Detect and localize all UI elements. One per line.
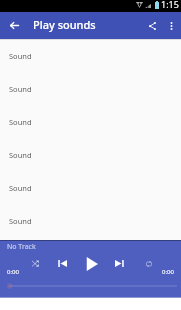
button[interactable]: Share <box>142 16 162 36</box>
staticText: 0:00 <box>162 268 174 276</box>
staticText: Sound <box>9 216 32 226</box>
staticText: Sound <box>9 51 32 61</box>
button[interactable]: Sound <box>0 171 181 204</box>
button[interactable]: Back <box>0 12 28 39</box>
staticText: Sound <box>9 150 32 160</box>
button[interactable]: Play <box>81 253 102 274</box>
staticText: Sound <box>9 84 32 94</box>
button[interactable]: Previous <box>54 255 71 272</box>
staticText: No Track <box>7 242 36 252</box>
staticText: 0:00 <box>7 268 19 276</box>
staticText: Sound <box>9 117 32 127</box>
button[interactable]: Sound <box>0 204 181 237</box>
staticText: 1:15 <box>161 0 179 10</box>
button[interactable]: Next <box>111 255 128 272</box>
button[interactable]: Sound <box>0 72 181 105</box>
button[interactable]: Sound <box>0 39 181 72</box>
button[interactable]: Shuffle <box>27 255 44 272</box>
button[interactable]: More options <box>161 16 181 36</box>
button[interactable]: Repeat <box>140 255 157 272</box>
button[interactable]: Sound <box>0 138 181 171</box>
staticText: Sound <box>9 183 32 193</box>
staticText: Play sounds <box>33 17 96 32</box>
button[interactable]: Sound <box>0 105 181 138</box>
